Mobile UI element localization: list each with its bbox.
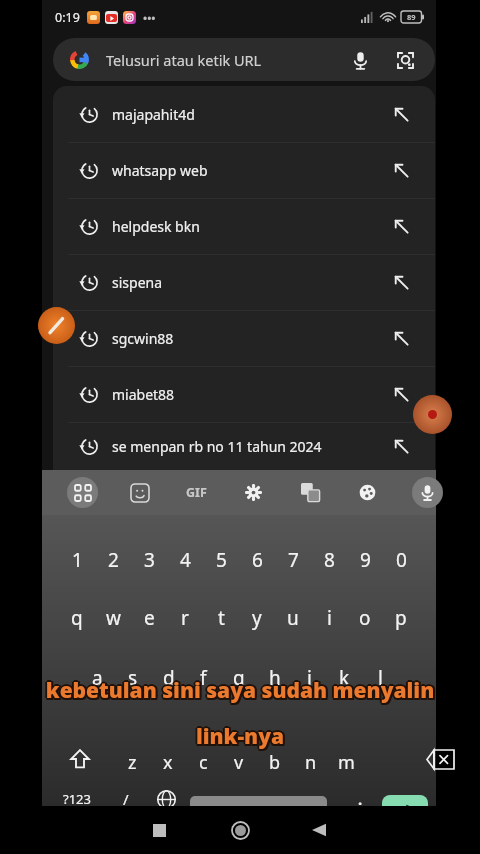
button[interactable]: whatsapp web [53,142,435,198]
button[interactable]: s [115,661,150,695]
button[interactable]: n [293,745,329,779]
button[interactable]: Edit query [389,326,413,350]
button[interactable]: Back [304,815,334,845]
button[interactable]: h [257,661,292,695]
staticText: s [128,665,138,691]
button[interactable]: Toolbox [67,477,98,508]
button[interactable]: j [292,661,327,695]
button[interactable]: b [257,745,293,779]
button[interactable]: v [221,745,257,779]
button[interactable]: majapahit4d [53,86,435,142]
staticText: 0 [396,547,407,573]
button[interactable]: r [167,601,203,635]
button[interactable]: ?123 [50,782,104,816]
staticText: link-nya [0,724,479,753]
button[interactable]: g [221,661,256,695]
button[interactable]: Theme [352,477,383,508]
button[interactable]: 3 [131,543,167,577]
button[interactable]: 7 [275,543,311,577]
staticText: n [305,750,317,775]
button[interactable]: k [327,661,362,695]
staticText: t [218,605,225,631]
button[interactable]: o [347,601,383,635]
staticText: b [269,750,281,775]
staticText: o [359,605,371,631]
button[interactable]: Enter [382,795,428,823]
button[interactable]: Voice search [347,47,373,73]
button[interactable]: t [203,601,239,635]
button[interactable]: Telusuri atau ketik URL [53,38,435,81]
button[interactable]: sgcwin88 [53,310,435,366]
button[interactable]: . [342,782,378,816]
button[interactable]: f [186,661,221,695]
staticText: g [233,665,245,691]
button[interactable]: Edit query [389,270,413,294]
button[interactable]: se menpan rb no 11 tahun 2024 [53,422,435,470]
staticText: link-nya [0,720,480,749]
button[interactable]: sispena [53,254,435,310]
staticText: k [339,665,350,691]
button[interactable]: Edit query [389,102,413,126]
staticText: 0:19 [55,9,80,26]
button[interactable]: 9 [347,543,383,577]
button[interactable]: helpdesk bkn [53,198,435,254]
button[interactable]: l [363,661,398,695]
button[interactable]: / [104,782,148,816]
button[interactable]: Settings [238,477,269,508]
staticText: i [327,605,332,631]
button[interactable]: 1 [59,543,95,577]
staticText: . [358,789,363,809]
button[interactable]: Stickers [124,477,155,508]
button[interactable]: c [185,745,221,779]
button[interactable]: 2 [95,543,131,577]
button[interactable]: u [275,601,311,635]
button[interactable]: miabet88 [53,366,435,422]
staticText: kebetulan sini saya sudah menyalin [0,676,480,705]
button[interactable]: p [383,601,419,635]
button[interactable]: q [59,601,95,635]
staticText: Indonesia [232,806,286,822]
button[interactable]: 8 [311,543,347,577]
button[interactable]: x [150,745,186,779]
button[interactable]: Home [224,814,256,846]
button[interactable]: 6 [239,543,275,577]
staticText: link-nya [0,721,479,750]
staticText: link-nya [2,722,480,751]
button[interactable]: Edit query [389,158,413,182]
button[interactable]: Google Lens [392,47,418,73]
staticText: h [269,665,281,691]
button[interactable]: Screen draw tool [38,307,75,344]
staticText: 6 [252,547,263,573]
button[interactable]: d [151,661,186,695]
button[interactable]: 5 [203,543,239,577]
button[interactable]: i [311,601,347,635]
button[interactable]: y [239,601,275,635]
button[interactable]: Edit query [389,434,413,458]
staticText: l [378,665,383,691]
staticText: 8 [324,547,335,573]
button[interactable]: w [95,601,131,635]
button[interactable]: a [80,661,115,695]
staticText: kebetulan sini saya sudah menyalin [2,676,480,705]
staticText: se menpan rb no 11 tahun 2024 [112,437,322,456]
button[interactable]: GIF [181,477,212,508]
button[interactable]: Edit query [389,382,413,406]
button[interactable]: Voice input [412,477,443,508]
staticText: f [200,665,207,691]
button[interactable]: z [114,745,150,779]
button[interactable]: 4 [167,543,203,577]
button[interactable]: e [131,601,167,635]
button[interactable]: Recent apps [144,815,174,845]
staticText: ••• [143,10,156,25]
button[interactable]: Change language [146,782,186,816]
staticText: z [128,750,137,775]
button[interactable]: Indonesia [190,796,327,832]
button[interactable]: Backspace [419,742,461,776]
button[interactable]: Shift [60,742,100,776]
button[interactable]: m [328,745,364,779]
button[interactable]: Edit query [389,214,413,238]
staticText: u [287,605,299,631]
button[interactable]: Translate [295,477,326,508]
button[interactable]: 0 [383,543,419,577]
staticText: w [106,605,121,631]
